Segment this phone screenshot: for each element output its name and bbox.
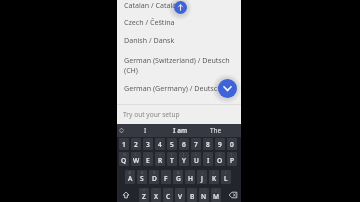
staticText: V <box>178 192 183 201</box>
staticText: T <box>170 156 174 165</box>
staticText: Try out your setup <box>123 110 180 119</box>
staticText: * <box>143 188 145 193</box>
button[interactable]: \ <box>131 152 141 166</box>
staticText: Czech / Čeština <box>124 17 175 27</box>
button[interactable]: = <box>155 152 165 166</box>
button[interactable]: I am <box>163 124 198 137</box>
staticText: $ <box>153 170 156 175</box>
button[interactable]: Expand suggestions <box>117 124 126 137</box>
button[interactable]: Shift <box>116 188 136 202</box>
staticText: L <box>224 174 228 183</box>
staticText: \ <box>135 152 137 157</box>
button[interactable]: The <box>198 124 233 137</box>
staticText: ) <box>225 170 227 175</box>
button[interactable]: - <box>185 170 195 184</box>
staticText: N <box>201 192 207 201</box>
button[interactable]: % <box>119 152 129 166</box>
staticText: _ <box>165 170 167 175</box>
button[interactable]: ? <box>211 188 221 202</box>
button[interactable]: ! <box>199 188 209 202</box>
staticText: K <box>212 174 217 183</box>
staticText: X <box>154 192 159 201</box>
button[interactable]: 0 <box>227 138 237 150</box>
button[interactable]: [ <box>167 152 177 166</box>
button[interactable]: 7 <box>191 138 201 150</box>
button[interactable]: : <box>175 188 185 202</box>
staticText: I am <box>173 126 188 135</box>
button[interactable]: 3 <box>143 138 153 150</box>
button[interactable]: Catalan / Català <box>117 0 241 13</box>
staticText: [ <box>171 152 173 157</box>
staticText: B <box>190 192 195 201</box>
button[interactable]: " <box>151 188 161 202</box>
button[interactable]: Backspace <box>223 188 243 202</box>
staticText: + <box>201 170 204 175</box>
button[interactable]: | <box>143 152 153 166</box>
staticText: & <box>177 170 180 175</box>
staticText: Q <box>121 156 127 165</box>
button[interactable]: 6 <box>179 138 189 150</box>
staticText: = <box>159 152 162 157</box>
staticText: - <box>189 170 191 175</box>
button[interactable]: + <box>197 170 207 184</box>
staticText: 2 <box>134 140 138 149</box>
staticText: { <box>219 152 221 157</box>
staticText: > <box>207 152 210 157</box>
staticText: J <box>201 174 203 183</box>
staticText: Z <box>142 192 146 201</box>
staticText: The <box>210 126 222 135</box>
button[interactable]: < <box>191 152 201 166</box>
staticText: R <box>158 156 163 165</box>
button[interactable]: 8 <box>203 138 213 150</box>
staticText: 5 <box>170 140 174 149</box>
button[interactable]: 9 <box>215 138 225 150</box>
button[interactable]: German (Germany) / Deutsch <box>117 79 241 96</box>
button[interactable]: > <box>203 152 213 166</box>
staticText: ? <box>215 188 217 193</box>
staticText: O <box>217 156 223 165</box>
button[interactable]: Czech / Čeština <box>117 13 241 30</box>
button[interactable]: ) <box>221 170 231 184</box>
button[interactable]: Try out your setup <box>117 105 241 124</box>
button[interactable]: ( <box>209 170 219 184</box>
staticText: 1 <box>122 140 126 149</box>
staticText: } <box>231 152 233 157</box>
button[interactable]: ] <box>179 152 189 166</box>
button[interactable]: ; <box>187 188 197 202</box>
button[interactable]: { <box>215 152 225 166</box>
staticText: 3 <box>146 140 150 149</box>
button[interactable]: 4 <box>155 138 165 150</box>
staticText: < <box>195 152 198 157</box>
button[interactable]: 5 <box>167 138 177 150</box>
staticText: 6 <box>182 140 186 149</box>
staticText: D <box>152 174 157 183</box>
staticText: Y <box>182 156 186 165</box>
button[interactable]: I <box>128 124 163 137</box>
button[interactable]: Scroll down <box>218 79 237 98</box>
staticText: F <box>164 174 168 183</box>
button[interactable]: & <box>173 170 183 184</box>
staticText: A <box>128 174 133 183</box>
button[interactable]: $ <box>149 170 159 184</box>
button[interactable]: _ <box>161 170 171 184</box>
staticText: G <box>176 174 181 183</box>
button[interactable]: # <box>137 170 147 184</box>
button[interactable]: @ <box>125 170 135 184</box>
button[interactable]: * <box>139 188 149 202</box>
staticText: @ <box>128 170 132 175</box>
button[interactable]: } <box>227 152 237 166</box>
staticText: : <box>180 188 181 193</box>
staticText: 7 <box>194 140 198 149</box>
button[interactable]: Scroll up <box>174 1 187 14</box>
button[interactable]: German (Switzerland) / Deutsch <box>117 51 241 79</box>
staticText: U <box>194 156 199 165</box>
staticText: W <box>133 156 140 165</box>
staticText: 4 <box>158 140 162 149</box>
button[interactable]: Danish / Dansk <box>117 31 241 48</box>
button[interactable]: 1 <box>119 138 129 150</box>
staticText: # <box>141 170 144 175</box>
button[interactable]: 2 <box>131 138 141 150</box>
staticText: C <box>166 192 171 201</box>
button[interactable]: ' <box>163 188 173 202</box>
